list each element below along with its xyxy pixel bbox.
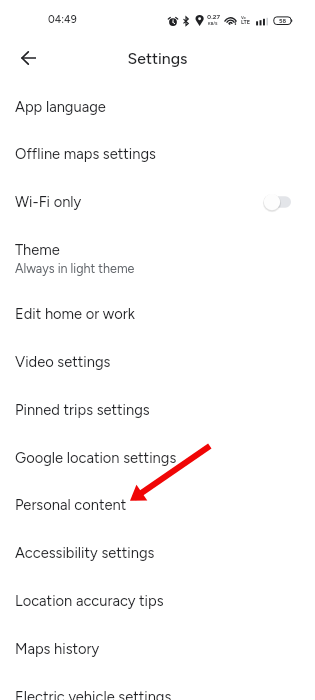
button[interactable]: Personal content xyxy=(0,481,315,529)
staticText: Edit home or work xyxy=(15,305,135,323)
button[interactable]: Accessibility settings xyxy=(0,529,315,577)
button[interactable]: Pinned trips settings xyxy=(0,386,315,434)
staticText: Offline maps settings xyxy=(15,145,156,163)
button[interactable]: Edit home or work xyxy=(0,290,315,338)
staticText: Location accuracy tips xyxy=(15,592,164,610)
staticText: Settings xyxy=(0,49,315,68)
staticText: Accessibility settings xyxy=(15,544,155,562)
staticText: Always in light theme xyxy=(15,261,135,276)
button[interactable]: App language xyxy=(0,83,315,131)
button[interactable]: Google location settings xyxy=(0,434,315,482)
button[interactable]: Offline maps settings xyxy=(0,130,315,178)
staticText: Google location settings xyxy=(15,449,177,467)
staticText: App language xyxy=(15,98,106,116)
staticText: Vo xyxy=(241,15,246,20)
staticText: 04:49 xyxy=(48,13,77,26)
staticText: 0.27 xyxy=(207,13,220,21)
button[interactable]: Electric vehicle settings xyxy=(0,673,315,700)
staticText: KB/S xyxy=(208,21,218,26)
button[interactable]: Video settings xyxy=(0,338,315,386)
button[interactable]: Wi-Fi only xyxy=(257,191,291,213)
staticText: Maps history xyxy=(15,640,100,658)
staticText: Electric vehicle settings xyxy=(15,688,172,700)
button[interactable]: Location accuracy tips xyxy=(0,577,315,625)
staticText: 58 xyxy=(279,17,287,24)
button[interactable]: Back xyxy=(11,40,46,75)
button[interactable]: Theme xyxy=(0,226,315,290)
staticText: Wi-Fi only xyxy=(15,193,82,211)
staticText: Pinned trips settings xyxy=(15,401,150,419)
staticText: Video settings xyxy=(15,353,111,371)
button[interactable]: Wi-Fi only xyxy=(0,178,315,226)
staticText: Personal content xyxy=(15,496,127,514)
staticText: Theme xyxy=(15,241,60,259)
staticText: LTE xyxy=(241,19,251,26)
button[interactable]: Maps history xyxy=(0,625,315,673)
